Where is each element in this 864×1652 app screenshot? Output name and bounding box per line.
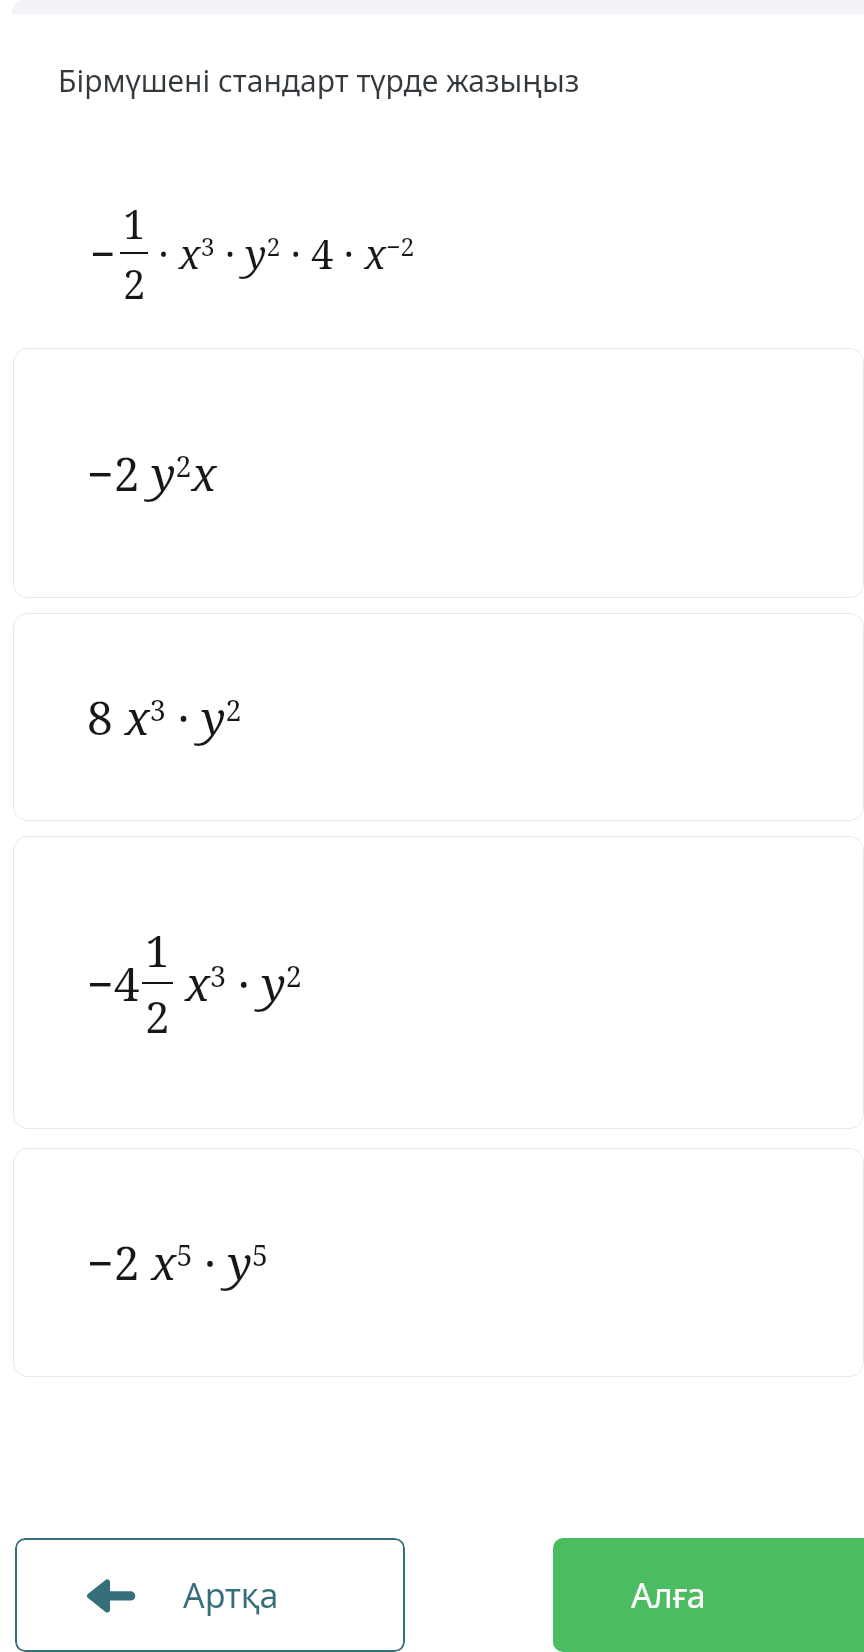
staticText: −4 <box>87 952 140 1015</box>
button[interactable]: −2 x5 · y5 <box>13 1148 864 1377</box>
staticText: Артқа <box>183 1572 279 1618</box>
staticText: · x3 · y2 · 4 · x−2 <box>148 226 415 280</box>
button[interactable]: Артқа <box>15 1538 405 1652</box>
staticText: Бірмүшені стандарт түрде жазыңыз <box>58 60 580 101</box>
staticText: 8 x3 · y2 <box>87 686 242 749</box>
button[interactable]: 8 x3 · y2 <box>13 613 864 821</box>
staticText: 1 <box>145 920 170 980</box>
button[interactable]: −2 y2x <box>13 348 864 598</box>
staticText: 2 <box>123 256 146 310</box>
staticText: 2 <box>145 986 170 1046</box>
staticText: − <box>90 223 116 283</box>
button[interactable]: Алға <box>553 1538 864 1652</box>
staticText: x3 · y2 <box>173 952 302 1015</box>
button[interactable]: −4 <box>13 836 864 1129</box>
other: Артқа <box>87 1572 133 1618</box>
staticText: Алға <box>631 1572 706 1618</box>
staticText: −2 y2x <box>87 442 217 505</box>
staticText: 1 <box>123 196 146 250</box>
staticText: −2 x5 · y5 <box>87 1231 269 1294</box>
